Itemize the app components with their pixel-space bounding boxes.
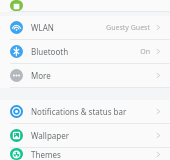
button[interactable]: WLAN [0, 16, 170, 39]
staticText: More [31, 70, 51, 81]
staticText: On [140, 47, 150, 57]
button[interactable]: More [0, 64, 170, 87]
button[interactable]: Notifications & status bar [0, 100, 170, 123]
staticText: Bluetooth [31, 46, 69, 57]
staticText: Themes [31, 149, 61, 160]
staticText: Notifications & status bar [31, 106, 127, 117]
staticText: Wallpaper [31, 130, 70, 141]
button[interactable]: Bluetooth [0, 40, 170, 63]
staticText: Guesty Guest [106, 23, 150, 33]
button[interactable]: Themes [0, 148, 170, 160]
staticText: WLAN [31, 22, 54, 33]
button[interactable] [0, 0, 170, 11]
button[interactable]: Wallpaper [0, 124, 170, 147]
